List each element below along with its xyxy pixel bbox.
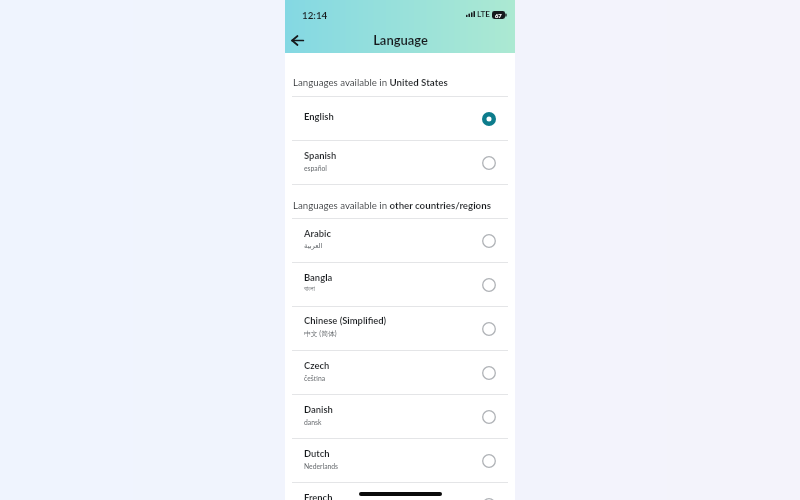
button[interactable]: Danish bbox=[285, 395, 515, 438]
staticText: Chinese (Simplified) bbox=[304, 315, 387, 326]
staticText: Spanish bbox=[304, 150, 337, 161]
staticText: Danish bbox=[304, 404, 333, 415]
staticText: Dutch bbox=[304, 448, 330, 459]
staticText: español bbox=[304, 164, 327, 172]
staticText: Arabic bbox=[304, 228, 331, 239]
button[interactable]: French bbox=[285, 483, 515, 500]
staticText: English bbox=[304, 111, 334, 122]
staticText: 12:14 bbox=[302, 9, 328, 21]
staticText: 中文 (简体) bbox=[304, 329, 337, 338]
button[interactable]: Back bbox=[286, 29, 308, 51]
staticText: العربية bbox=[304, 242, 323, 250]
button[interactable]: Arabic bbox=[285, 219, 515, 262]
staticText: বাংলা bbox=[304, 286, 315, 293]
staticText: 67 bbox=[495, 12, 502, 19]
staticText: French bbox=[304, 492, 333, 500]
staticText: dansk bbox=[304, 418, 322, 426]
button[interactable]: Dutch bbox=[285, 439, 515, 482]
staticText: Czech bbox=[304, 360, 330, 371]
staticText: Language bbox=[297, 32, 504, 47]
staticText: Languages available in United States bbox=[293, 76, 448, 88]
button[interactable]: Chinese (Simplified) bbox=[285, 307, 515, 350]
staticText: Nederlands bbox=[304, 462, 339, 470]
staticText: Languages available in other countries/r… bbox=[293, 199, 491, 211]
staticText: LTE bbox=[477, 9, 490, 19]
staticText: Bangla bbox=[304, 272, 333, 283]
button[interactable]: English bbox=[285, 97, 515, 140]
button[interactable]: Czech bbox=[285, 351, 515, 394]
button[interactable]: Bangla bbox=[285, 263, 515, 306]
button[interactable]: Spanish bbox=[285, 141, 515, 184]
staticText: čeština bbox=[304, 374, 326, 382]
